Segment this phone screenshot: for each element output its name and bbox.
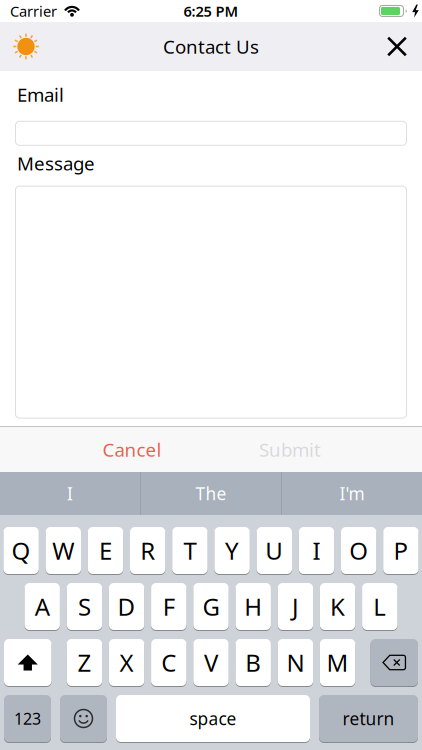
staticText: N (286, 647, 304, 678)
staticText: Email (17, 82, 64, 107)
staticText: M (327, 647, 349, 678)
button[interactable]: R (130, 527, 165, 574)
button[interactable]: Y (214, 527, 250, 574)
button[interactable]: space (116, 695, 310, 742)
button[interactable]: V (193, 639, 229, 686)
staticText: V (204, 647, 218, 678)
staticText: T (183, 535, 196, 566)
button[interactable]: X (109, 639, 144, 686)
button[interactable]: I (299, 527, 334, 574)
button[interactable]: Submit (235, 426, 345, 472)
button[interactable]: S (67, 583, 102, 630)
staticText: E (99, 535, 112, 566)
button[interactable]: A (24, 583, 60, 630)
button[interactable]: C (151, 639, 186, 686)
button[interactable]: J (278, 583, 313, 630)
staticText: Message (17, 151, 95, 176)
button[interactable]: Z (67, 639, 102, 686)
button[interactable]: U (257, 527, 292, 574)
staticText: space (189, 707, 236, 730)
staticText: Y (225, 535, 239, 566)
button[interactable]: G (193, 583, 229, 630)
staticText: R (140, 535, 155, 566)
button[interactable]: Numbers (4, 695, 51, 742)
staticText: Carrier (10, 1, 57, 21)
staticText: L (373, 591, 386, 622)
button[interactable]: I (0, 472, 140, 515)
staticText: B (245, 647, 261, 678)
staticText: return (342, 707, 394, 730)
staticText: H (244, 591, 262, 622)
staticText: S (78, 591, 91, 622)
staticText: U (265, 535, 283, 566)
button[interactable]: M (320, 639, 355, 686)
button[interactable]: The (141, 472, 281, 515)
button[interactable]: W (46, 527, 81, 574)
staticText: Contact Us (163, 34, 259, 59)
button[interactable]: K (320, 583, 355, 630)
staticText: I'm (339, 482, 364, 505)
button[interactable]: F (151, 583, 186, 630)
button[interactable]: H (235, 583, 271, 630)
staticText: A (35, 591, 50, 622)
staticText: Z (77, 647, 91, 678)
staticText: Q (12, 535, 31, 566)
button[interactable]: O (341, 527, 376, 574)
button[interactable]: D (109, 583, 144, 630)
staticText: P (393, 535, 408, 566)
staticText: The (195, 482, 226, 505)
button[interactable]: Close (387, 36, 422, 56)
staticText: C (161, 647, 176, 678)
button[interactable]: B (235, 639, 271, 686)
staticText: G (202, 591, 219, 622)
button[interactable]: Message (15, 186, 407, 419)
button[interactable]: Delete (370, 639, 418, 686)
button[interactable]: Emoji (60, 695, 107, 742)
button[interactable]: I'm (282, 472, 422, 515)
button[interactable]: P (383, 527, 419, 574)
staticText: I (67, 482, 73, 505)
staticText: Cancel (102, 437, 161, 462)
button[interactable]: E (88, 527, 123, 574)
button[interactable]: Theme (0, 33, 39, 59)
staticText: D (118, 591, 136, 622)
staticText: Submit (259, 437, 321, 462)
staticText: O (349, 535, 368, 566)
button[interactable]: Shift (4, 639, 51, 686)
staticText: J (292, 591, 299, 622)
button[interactable]: T (172, 527, 208, 574)
button[interactable]: Email (15, 121, 407, 146)
button[interactable]: N (278, 639, 313, 686)
staticText: K (330, 591, 345, 622)
button[interactable]: L (362, 583, 397, 630)
staticText: I (312, 535, 320, 566)
button[interactable]: Cancel (77, 426, 187, 472)
staticText: F (163, 591, 175, 622)
button[interactable]: Q (3, 527, 39, 574)
staticText: W (52, 535, 74, 566)
button[interactable]: return (319, 695, 418, 742)
staticText: 6:25 PM (183, 1, 238, 21)
staticText: 123 (14, 708, 41, 729)
staticText: X (120, 647, 134, 678)
